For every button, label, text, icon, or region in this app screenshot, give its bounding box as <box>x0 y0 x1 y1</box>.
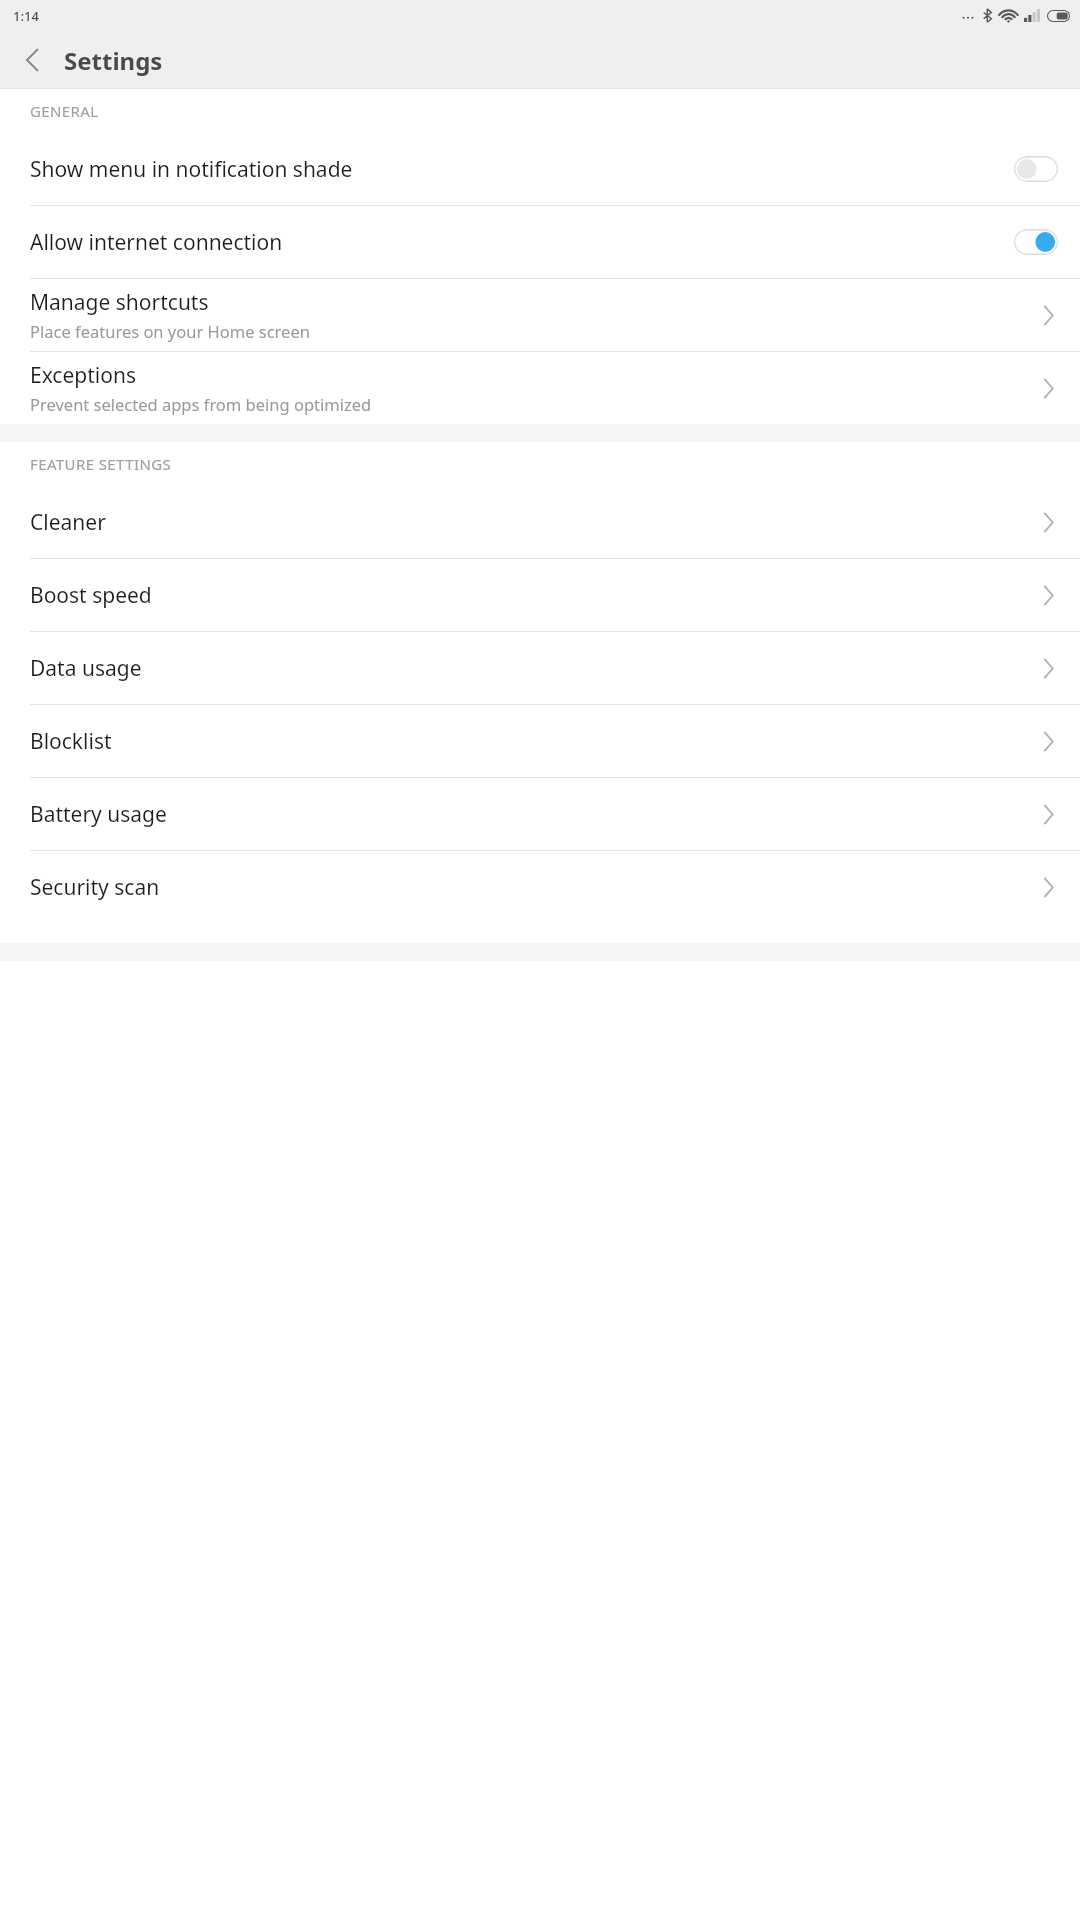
button[interactable]: Cleaner <box>0 486 1080 558</box>
staticText: Prevent selected apps from being optimiz… <box>30 393 372 415</box>
button[interactable]: Allow internet connection <box>0 206 1080 278</box>
staticText: Settings <box>64 44 163 77</box>
staticText: Battery usage <box>30 800 167 829</box>
button[interactable]: Battery usage <box>0 778 1080 850</box>
button[interactable]: Blocklist <box>0 705 1080 777</box>
button[interactable]: Manage shortcuts <box>0 279 1080 351</box>
staticText: FEATURE SETTINGS <box>30 454 172 474</box>
button[interactable]: Data usage <box>0 632 1080 704</box>
button[interactable]: Exceptions <box>0 352 1080 424</box>
button[interactable]: Show menu in notification shade <box>0 133 1080 205</box>
button[interactable]: Off <box>1014 156 1058 182</box>
staticText: Security scan <box>30 873 160 902</box>
button[interactable]: Security scan <box>0 851 1080 923</box>
staticText: GENERAL <box>30 101 99 121</box>
staticText: Data usage <box>30 654 142 683</box>
staticText: Blocklist <box>30 727 112 756</box>
button[interactable]: Back <box>8 36 56 84</box>
button[interactable]: On <box>1014 229 1058 255</box>
staticText: Place features on your Home screen <box>30 320 310 342</box>
staticText: Allow internet connection <box>30 228 1014 257</box>
staticText: Exceptions <box>30 361 136 390</box>
button[interactable]: Boost speed <box>0 559 1080 631</box>
staticText: 1:14 <box>13 7 39 25</box>
staticText: Manage shortcuts <box>30 288 209 317</box>
staticText: Cleaner <box>30 508 106 537</box>
staticText: Show menu in notification shade <box>30 155 1014 184</box>
staticText: Boost speed <box>30 581 152 610</box>
